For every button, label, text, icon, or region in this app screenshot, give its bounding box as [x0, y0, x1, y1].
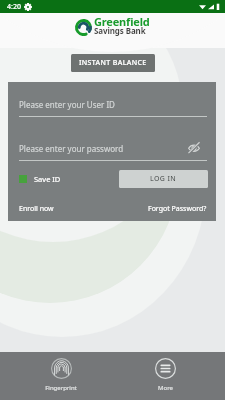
staticText: Savings Bank — [94, 25, 146, 36]
staticText: INSTANT BALANCE — [79, 58, 147, 68]
button[interactable]: Enroll now — [19, 204, 54, 214]
staticText: 4:20 — [7, 2, 21, 12]
button[interactable]: Fingerprint — [35, 353, 87, 399]
button[interactable]: Save ID — [18, 173, 62, 185]
staticText: More — [158, 384, 173, 392]
staticText: LOG IN — [150, 174, 177, 184]
staticText: Please enter your User ID — [19, 99, 115, 110]
button[interactable]: LOG IN — [119, 170, 208, 188]
staticText: Fingerprint — [45, 384, 77, 392]
button[interactable]: INSTANT BALANCE — [71, 54, 155, 72]
button[interactable]: More — [139, 353, 191, 399]
staticText: Please enter your password — [19, 143, 124, 154]
staticText: Save ID — [34, 174, 61, 184]
other: Show password — [188, 142, 200, 154]
staticText: Greenfield — [94, 14, 150, 29]
button[interactable]: Forgot Password? — [148, 204, 207, 214]
